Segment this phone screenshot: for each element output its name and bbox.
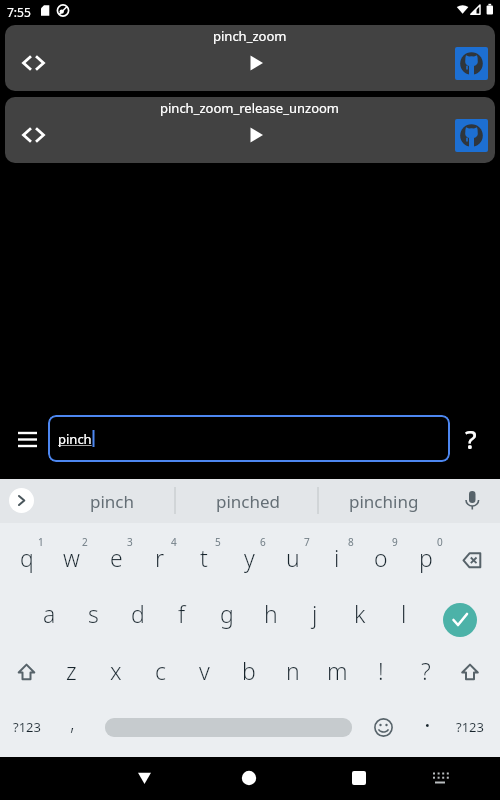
button[interactable]: a	[27, 591, 71, 635]
staticText: ?123	[13, 718, 41, 736]
button[interactable]: pinching	[324, 479, 444, 523]
button[interactable]: i	[315, 535, 359, 579]
button[interactable]: ?123	[447, 707, 493, 747]
button[interactable]	[105, 718, 352, 737]
button[interactable]	[452, 539, 492, 579]
button[interactable]: p	[404, 535, 448, 579]
button[interactable]: f	[160, 591, 204, 635]
button[interactable]: pinch_zoom	[5, 25, 495, 91]
button[interactable]: l	[382, 591, 426, 635]
button[interactable]: ?123	[4, 707, 50, 747]
button[interactable]: g	[205, 591, 249, 635]
staticText: h	[264, 598, 278, 629]
button[interactable]: b	[227, 648, 271, 692]
staticText: 4	[171, 535, 177, 549]
button[interactable]	[125, 760, 165, 797]
staticText: g	[220, 598, 234, 629]
staticText: pinch	[58, 430, 92, 448]
button[interactable]: pinched	[188, 479, 308, 523]
staticText: pinch_zoom_release_unzoom	[160, 99, 340, 117]
staticText: k	[354, 598, 366, 629]
staticText: 7	[304, 535, 310, 549]
staticText: !	[378, 655, 384, 686]
staticText: 0	[437, 535, 443, 549]
staticText: 7:55	[7, 4, 31, 20]
button[interactable]: o	[359, 535, 403, 579]
staticText: n	[286, 655, 300, 686]
button[interactable]: m	[315, 648, 359, 692]
staticText: 9	[392, 535, 398, 549]
button[interactable]: w	[49, 535, 93, 579]
staticText: 1	[38, 535, 44, 549]
button[interactable]: r	[138, 535, 182, 579]
button[interactable]: pinch	[48, 415, 450, 462]
button[interactable]	[5, 651, 45, 691]
button[interactable]	[14, 426, 42, 452]
button[interactable]: ,	[57, 700, 87, 744]
button[interactable]	[455, 119, 488, 152]
button[interactable]: k	[338, 591, 382, 635]
button[interactable]: c	[138, 648, 182, 692]
staticText: 3	[127, 535, 133, 549]
staticText: x	[110, 655, 122, 686]
button[interactable]	[450, 651, 490, 691]
staticText: 6	[260, 535, 266, 549]
staticText: t	[200, 542, 208, 573]
button[interactable]: !	[359, 648, 403, 692]
button[interactable]	[455, 47, 488, 80]
staticText: y	[244, 542, 255, 573]
button[interactable]: ?	[454, 418, 488, 458]
staticText: r	[155, 542, 165, 573]
staticText: w	[63, 542, 80, 573]
button[interactable]: y	[227, 535, 271, 579]
button[interactable]	[230, 760, 270, 797]
staticText: pinched	[216, 490, 281, 513]
button[interactable]: pinch	[52, 479, 172, 523]
staticText: ?	[465, 421, 477, 456]
staticText: pinch_zoom	[213, 27, 287, 45]
staticText: ?123	[456, 718, 484, 736]
staticText: 8	[348, 535, 354, 549]
button[interactable]: e	[94, 535, 138, 579]
button[interactable]: pinch_zoom_release_unzoom	[5, 97, 495, 163]
staticText: s	[88, 598, 99, 629]
button[interactable]: v	[182, 648, 226, 692]
button[interactable]: h	[249, 591, 293, 635]
staticText: a	[43, 598, 56, 629]
staticText: b	[242, 655, 256, 686]
staticText: j	[312, 598, 318, 629]
staticText: f	[178, 598, 186, 629]
staticText: pinch	[90, 490, 135, 513]
button[interactable]: x	[94, 648, 138, 692]
staticText: ?	[421, 655, 431, 686]
staticText: m	[327, 655, 348, 686]
staticText: 5	[215, 535, 221, 549]
staticText: i	[334, 542, 340, 573]
staticText: v	[199, 655, 210, 686]
button[interactable]: j	[293, 591, 337, 635]
staticText: d	[131, 598, 145, 629]
staticText: o	[374, 542, 388, 573]
staticText: c	[155, 655, 166, 686]
button[interactable]	[443, 603, 477, 637]
staticText: e	[110, 542, 123, 573]
button[interactable]: s	[71, 591, 115, 635]
button[interactable]: z	[49, 648, 93, 692]
button[interactable]	[364, 707, 404, 747]
staticText: p	[419, 542, 433, 573]
button[interactable]: t	[182, 535, 226, 579]
staticText: z	[66, 655, 77, 686]
button[interactable]	[335, 760, 375, 797]
staticText: l	[401, 598, 407, 629]
button[interactable]: ?	[404, 648, 448, 692]
staticText: ,	[70, 709, 75, 736]
button[interactable]: u	[271, 535, 315, 579]
button[interactable]: ·	[415, 705, 439, 745]
staticText: q	[20, 542, 34, 573]
staticText: 2	[82, 535, 88, 549]
staticText: pinching	[349, 490, 419, 513]
button[interactable]: d	[116, 591, 160, 635]
button[interactable]: q	[5, 535, 49, 579]
staticText: ·	[425, 714, 430, 737]
button[interactable]: n	[271, 648, 315, 692]
